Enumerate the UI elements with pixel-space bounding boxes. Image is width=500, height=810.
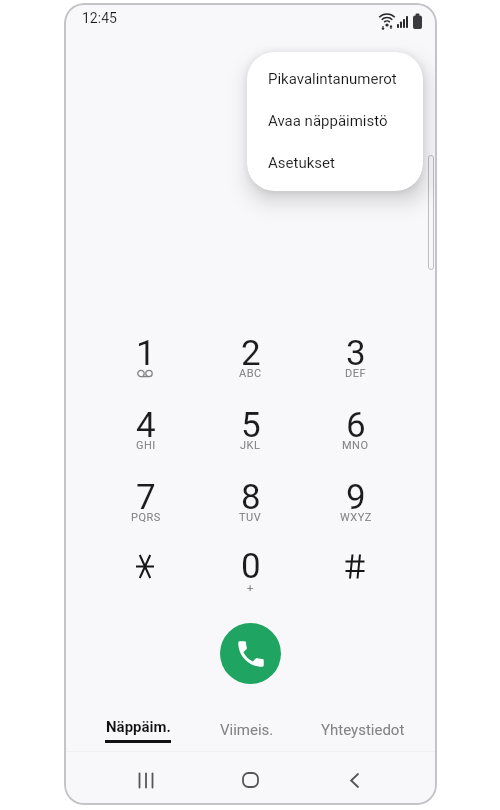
button[interactable]: Pikavalintanumerot <box>247 58 423 100</box>
staticText: MNO <box>342 439 369 452</box>
button[interactable]: 7 <box>93 471 198 543</box>
staticText: Pikavalintanumerot <box>268 70 397 88</box>
staticText: 7 <box>136 477 156 518</box>
staticText: 8 <box>241 477 261 518</box>
button[interactable]: Viimeis. <box>207 719 287 741</box>
staticText: 9 <box>346 477 366 518</box>
button[interactable]: 8 <box>198 471 303 543</box>
button[interactable]: 2 <box>198 327 303 399</box>
button[interactable] <box>220 623 281 684</box>
staticText: Näppäim. <box>106 718 171 736</box>
button[interactable]: 6 <box>303 399 408 471</box>
button[interactable]: 5 <box>198 399 303 471</box>
staticText: Viimeis. <box>220 721 274 739</box>
staticText: TUV <box>239 511 262 524</box>
button[interactable]: 1 <box>93 327 198 399</box>
staticText: 6 <box>346 405 366 446</box>
button[interactable]: 9 <box>303 471 408 543</box>
staticText: 2 <box>241 333 261 374</box>
button[interactable] <box>332 765 376 795</box>
staticText: 1 <box>136 333 156 374</box>
button[interactable] <box>303 540 408 612</box>
button[interactable]: Asetukset <box>247 142 423 184</box>
button[interactable]: 0 <box>198 540 303 612</box>
button[interactable]: Yhteystiedot <box>313 719 413 741</box>
staticText: Yhteystiedot <box>321 721 405 739</box>
staticText: GHI <box>136 439 156 452</box>
staticText: ABC <box>239 367 262 380</box>
staticText: WXYZ <box>340 511 372 524</box>
button[interactable]: Näppäim. <box>93 718 183 743</box>
staticText: Avaa näppäimistö <box>268 112 388 130</box>
staticText: PQRS <box>131 511 161 524</box>
staticText: Asetukset <box>268 154 335 172</box>
button[interactable] <box>93 540 198 612</box>
button[interactable]: 4 <box>93 399 198 471</box>
staticText: JKL <box>240 439 261 452</box>
button[interactable]: Avaa näppäimistö <box>247 100 423 142</box>
button[interactable]: 3 <box>303 327 408 399</box>
staticText: DEF <box>345 367 367 380</box>
staticText: 3 <box>346 333 366 374</box>
button[interactable] <box>124 765 168 795</box>
staticText: 12:45 <box>82 10 117 26</box>
staticText: 4 <box>136 405 156 446</box>
staticText: 5 <box>241 405 261 446</box>
staticText: 0 <box>241 546 261 587</box>
button[interactable] <box>228 765 272 795</box>
staticText: + <box>247 582 254 595</box>
